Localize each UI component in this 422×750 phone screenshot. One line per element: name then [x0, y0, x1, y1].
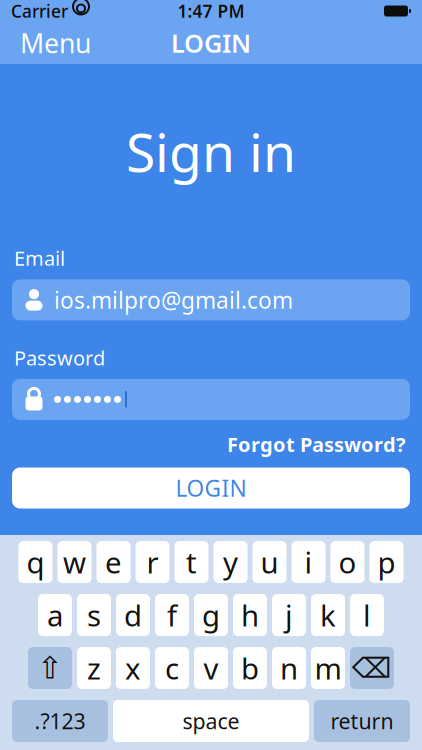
staticText: d	[124, 595, 142, 634]
button[interactable]: m	[311, 647, 345, 689]
button[interactable]: LOGIN	[12, 467, 410, 508]
button[interactable]: n	[272, 647, 306, 689]
button[interactable]: k	[311, 594, 345, 636]
staticText: u	[260, 542, 278, 581]
button[interactable]: g	[194, 594, 228, 636]
button[interactable]: Forgot Password?	[225, 428, 408, 460]
staticText: Password	[14, 344, 105, 371]
button[interactable]: e	[96, 541, 130, 583]
staticText: e	[105, 542, 122, 581]
staticText: v	[203, 648, 218, 687]
staticText: p	[377, 542, 395, 581]
button[interactable]: r	[135, 541, 169, 583]
staticText: y	[223, 542, 238, 581]
staticText: space	[182, 707, 239, 735]
staticText: 1:47 PM	[177, 0, 244, 22]
staticText: Forgot Password?	[227, 431, 406, 457]
staticText: a	[47, 595, 63, 634]
button[interactable]: w	[57, 541, 91, 583]
staticText: return	[330, 707, 393, 735]
button[interactable]: u	[252, 541, 286, 583]
staticText: Email	[14, 245, 65, 271]
button[interactable]: x	[116, 647, 150, 689]
staticText: Carrier	[11, 0, 68, 22]
button[interactable]: s	[77, 594, 111, 636]
button[interactable]: v	[194, 647, 228, 689]
button[interactable]: space	[113, 700, 309, 742]
staticText: Sign in	[126, 116, 296, 187]
staticText: ios.milpro@gmail.com	[54, 285, 293, 315]
button[interactable]: l	[350, 594, 384, 636]
button[interactable]: f	[155, 594, 189, 636]
button[interactable]: b	[233, 647, 267, 689]
staticText: s	[87, 595, 101, 634]
button[interactable]: t	[174, 541, 208, 583]
staticText: r	[146, 542, 158, 581]
button[interactable]: Delete	[350, 647, 394, 689]
staticText: .?123	[34, 707, 85, 735]
staticText: t	[186, 542, 197, 581]
staticText: LOGIN	[171, 26, 251, 60]
button[interactable]: Shift	[28, 647, 72, 689]
button[interactable]: o	[330, 541, 364, 583]
staticText: o	[338, 542, 356, 581]
staticText: h	[241, 595, 259, 634]
staticText: i	[304, 542, 312, 581]
staticText: b	[241, 648, 259, 687]
staticText: l	[363, 595, 371, 634]
staticText: q	[26, 542, 44, 581]
button[interactable]: q	[18, 541, 52, 583]
staticText: g	[202, 595, 220, 634]
button[interactable]: c	[155, 647, 189, 689]
button[interactable]: p	[369, 541, 403, 583]
staticText: ⌫	[352, 652, 392, 684]
staticText: ⇧	[37, 651, 63, 685]
staticText: x	[125, 648, 141, 687]
button[interactable]: d	[116, 594, 150, 636]
staticText: n	[280, 648, 298, 687]
staticText: z	[87, 648, 101, 687]
staticText: f	[167, 595, 177, 634]
button[interactable]: z	[77, 647, 111, 689]
staticText: m	[314, 648, 341, 687]
staticText: j	[285, 595, 293, 634]
button[interactable]: j	[272, 594, 306, 636]
staticText: LOGIN	[175, 473, 246, 503]
button[interactable]: y	[213, 541, 247, 583]
button[interactable]: i	[291, 541, 325, 583]
staticText: Menu	[20, 25, 91, 61]
button[interactable]: Menu	[10, 17, 101, 69]
button[interactable]: return	[314, 700, 410, 742]
staticText: c	[165, 648, 179, 687]
button[interactable]: h	[233, 594, 267, 636]
staticText: w	[63, 542, 86, 581]
staticText: k	[320, 595, 336, 634]
button[interactable]: .?123	[12, 700, 108, 742]
button[interactable]: a	[38, 594, 72, 636]
